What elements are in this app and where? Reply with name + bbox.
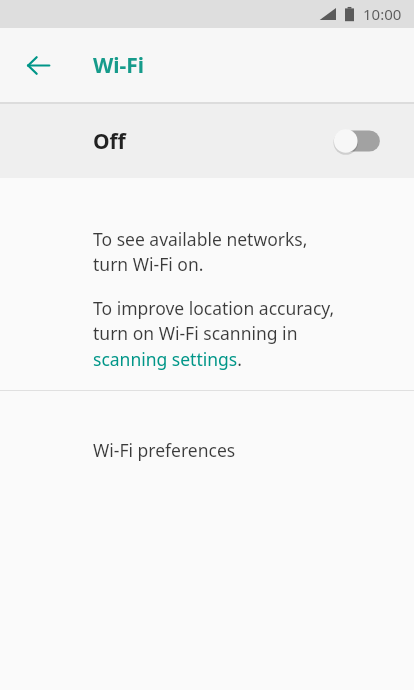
staticText: 10:00 bbox=[363, 4, 402, 24]
staticText: Wi-Fi bbox=[93, 51, 145, 80]
staticText: To improve location accuracy, turn on Wi… bbox=[93, 296, 335, 372]
button[interactable]: To improve location accuracy, turn on Wi… bbox=[93, 296, 335, 372]
button[interactable]: Off bbox=[0, 104, 414, 178]
button[interactable]: Back bbox=[14, 41, 62, 89]
staticText: To see available networks, turn Wi-Fi on… bbox=[93, 227, 308, 277]
staticText: Wi-Fi preferences bbox=[93, 438, 236, 462]
button[interactable]: Wi-Fi toggle, off bbox=[332, 125, 386, 157]
button[interactable]: Wi-Fi preferences bbox=[0, 391, 414, 511]
staticText: Off bbox=[93, 127, 126, 156]
